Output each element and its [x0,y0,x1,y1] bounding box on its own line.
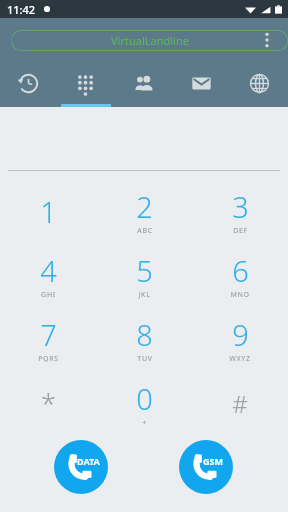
staticText: 3 [232,187,249,226]
button[interactable]: 5 [96,243,192,307]
button[interactable]: 0 [96,371,192,435]
staticText: JKL [138,290,151,300]
button[interactable]: 3 [192,179,288,243]
button[interactable]: 7 [0,307,96,371]
staticText: GSM [203,455,223,467]
button[interactable]: Call using GSM [179,440,233,494]
button[interactable]: Call history [0,62,57,104]
button[interactable]: # [192,371,288,435]
staticText: 8 [136,315,153,354]
button[interactable]: Call using DATA [54,440,108,494]
button[interactable]: 4 [0,243,96,307]
button[interactable]: 1 [0,179,96,243]
staticText: TUV [137,354,153,364]
staticText: VirtualLandline [111,33,189,48]
staticText: ABC [137,226,153,236]
staticText: 4 [40,251,57,290]
staticText: 11:42 [7,2,36,17]
button[interactable]: 8 [96,307,192,371]
staticText: 9 [232,315,249,354]
staticText: PQRS [38,354,59,364]
staticText: DATA [77,455,100,467]
button[interactable]: More options [252,25,282,55]
button[interactable]: VirtualLandline [11,30,288,51]
button[interactable]: Web [230,62,288,104]
staticText: GHI [41,290,56,300]
button[interactable]: 9 [192,307,288,371]
staticText: 5 [136,251,153,290]
button[interactable]: Dialpad [57,62,114,104]
staticText: 2 [136,187,153,226]
staticText: 7 [40,315,57,354]
staticText: * [41,385,56,422]
button[interactable]: Contacts [114,62,172,104]
button[interactable]: * [0,371,96,435]
staticText: 0 [136,379,153,418]
staticText: # [232,387,248,420]
staticText: DEF [233,226,248,236]
staticText: WXYZ [229,354,251,364]
staticText: 1 [40,192,57,231]
button[interactable]: 2 [96,179,192,243]
staticText: MNO [230,290,250,300]
button[interactable]: Messages [172,62,230,104]
staticText: 6 [232,251,249,290]
staticText: + [142,418,147,428]
button[interactable]: 6 [192,243,288,307]
